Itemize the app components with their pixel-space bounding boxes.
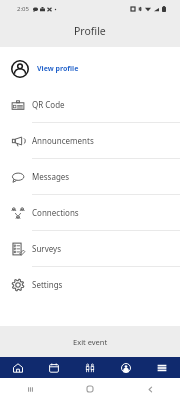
staticText: Surveys [32, 243, 61, 254]
button[interactable]: Messages [0, 159, 180, 194]
button[interactable]: Profile [108, 357, 144, 378]
button[interactable]: Agenda [36, 357, 72, 378]
button[interactable]: Home [0, 357, 36, 378]
staticText: 2:05 [17, 5, 29, 13]
staticText: View profile [37, 64, 79, 74]
button[interactable]: Connections [0, 195, 180, 230]
button[interactable]: Recent apps [0, 378, 60, 400]
button[interactable]: Home [60, 378, 120, 400]
staticText: QR Code [32, 99, 65, 110]
button[interactable]: View profile [0, 51, 180, 87]
staticText: Exit event [73, 337, 108, 347]
button[interactable]: Announcements [0, 123, 180, 158]
staticText: Settings [32, 279, 63, 290]
staticText: Announcements [32, 135, 94, 146]
button[interactable]: People [72, 357, 108, 378]
button[interactable]: More [144, 357, 180, 378]
staticText: Connections [32, 207, 79, 218]
button[interactable]: Back [120, 378, 180, 400]
button[interactable]: Surveys [0, 231, 180, 266]
button[interactable]: Exit event [0, 326, 180, 357]
button[interactable]: QR Code [0, 87, 180, 122]
staticText: Profile [74, 24, 106, 38]
button[interactable]: Settings [0, 267, 180, 302]
staticText: Messages [32, 171, 70, 182]
